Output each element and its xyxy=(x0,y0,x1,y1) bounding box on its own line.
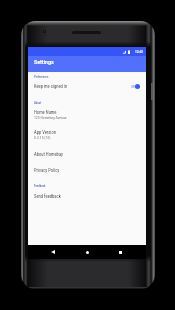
button[interactable]: Keep me signed in xyxy=(28,81,146,91)
staticText: App Version xyxy=(34,130,56,135)
button[interactable]: 123 Homeboy Avenue xyxy=(28,115,146,119)
button[interactable]: Privacy Policy xyxy=(28,168,146,173)
button[interactable]: Home xyxy=(82,245,92,259)
staticText: 123 Homeboy Avenue xyxy=(34,115,67,119)
staticText: Preferences xyxy=(34,75,49,79)
staticText: Feedback xyxy=(34,184,46,188)
staticText: Home Name xyxy=(34,110,57,115)
staticText: 0.2.15 (10) xyxy=(34,135,51,139)
staticText: About Homebay xyxy=(34,152,63,157)
button[interactable]: Feedback xyxy=(28,184,146,188)
staticText: Send feedback xyxy=(34,194,61,199)
button[interactable]: App Version xyxy=(28,130,146,135)
staticText: Keep me signed in xyxy=(34,84,68,89)
button[interactable]: 0.2.15 (10) xyxy=(28,135,146,139)
staticText: 12:48 xyxy=(135,50,143,54)
button[interactable]: About xyxy=(28,101,146,105)
button[interactable]: Home Name xyxy=(28,110,146,115)
button[interactable]: About Homebay xyxy=(28,152,146,157)
button[interactable]: Preferences xyxy=(28,75,146,79)
staticText: About xyxy=(34,101,42,105)
button[interactable]: Send feedback xyxy=(28,194,146,199)
button[interactable]: Back xyxy=(48,245,58,259)
staticText: Privacy Policy xyxy=(34,168,60,173)
staticText: Settings xyxy=(34,58,54,65)
button[interactable]: Recents xyxy=(115,245,125,259)
